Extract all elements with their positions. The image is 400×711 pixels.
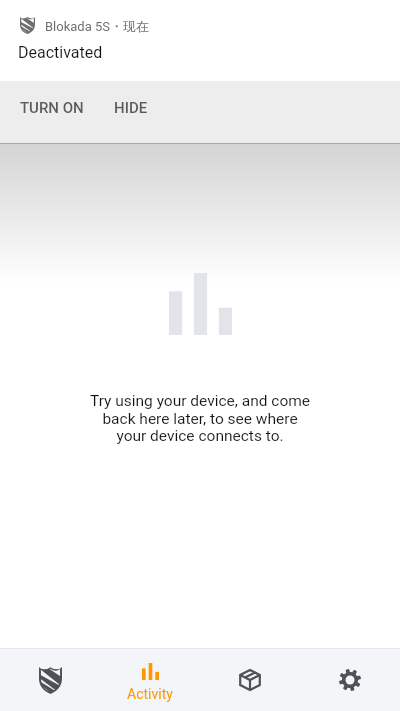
staticText: Activity <box>127 686 173 702</box>
staticText: HIDE <box>114 99 148 117</box>
button[interactable]: Activity <box>100 649 200 711</box>
button[interactable]: Settings <box>300 649 400 711</box>
button[interactable]: Home <box>0 649 100 711</box>
staticText: Blokada 5S・现在 <box>45 18 149 34</box>
staticText: TURN ON <box>20 99 84 117</box>
button[interactable]: Packs <box>200 649 300 711</box>
staticText: Try using your device, and come back her… <box>87 392 313 445</box>
button[interactable]: TURN ON <box>8 81 96 135</box>
staticText: Deactivated <box>18 43 103 62</box>
button[interactable]: HIDE <box>102 81 160 135</box>
